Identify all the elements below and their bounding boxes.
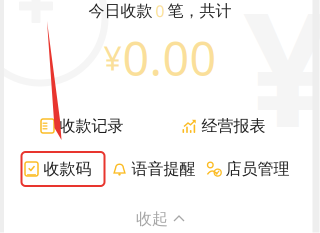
staticText: 0: [155, 0, 164, 22]
button[interactable]: 收款记录: [40, 116, 123, 136]
staticText: 语音提醒: [131, 159, 195, 179]
staticText: 笔，共计: [167, 1, 231, 21]
staticText: 经营报表: [201, 116, 265, 136]
staticText: ¥: [103, 37, 121, 79]
staticText: 0.00: [122, 27, 216, 89]
button[interactable]: 经营报表: [182, 116, 265, 136]
button[interactable]: 语音提醒: [112, 159, 195, 179]
button[interactable]: 收起: [136, 209, 184, 229]
staticText: 店员管理: [225, 159, 289, 179]
staticText: 收款记录: [59, 116, 123, 136]
button[interactable]: 收款码: [24, 159, 91, 179]
staticText: 收款码: [43, 159, 91, 179]
button[interactable]: 店员管理: [206, 159, 289, 179]
staticText: ¥: [243, 0, 320, 170]
staticText: 收起: [136, 209, 168, 229]
staticText: 今日收款: [88, 1, 152, 21]
